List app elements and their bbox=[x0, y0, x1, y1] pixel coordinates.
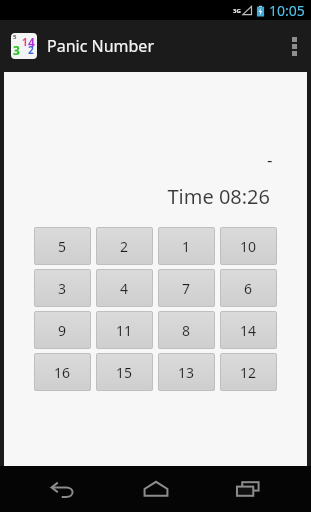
staticText: 10 bbox=[240, 237, 257, 256]
staticText: 11 bbox=[116, 321, 133, 340]
staticText: 14 bbox=[240, 321, 257, 340]
button[interactable]: 16 bbox=[34, 353, 91, 391]
staticText: 2 bbox=[28, 43, 34, 57]
button[interactable]: 11 bbox=[96, 311, 153, 349]
button[interactable]: 2 bbox=[96, 227, 153, 265]
staticText: 13 bbox=[178, 363, 195, 382]
button[interactable]: 12 bbox=[220, 353, 277, 391]
button[interactable]: 1 bbox=[158, 227, 215, 265]
staticText: 3 bbox=[13, 42, 20, 58]
button[interactable]: 7 bbox=[158, 269, 215, 307]
staticText: 5 bbox=[13, 33, 17, 41]
staticText: 10:05 bbox=[269, 1, 305, 20]
staticText: Panic Number bbox=[47, 35, 154, 57]
button[interactable]: Home bbox=[127, 466, 185, 512]
staticText: 2 bbox=[120, 237, 129, 256]
button[interactable]: 13 bbox=[158, 353, 215, 391]
button[interactable]: 5 bbox=[34, 227, 91, 265]
button[interactable]: Recent apps bbox=[219, 466, 277, 512]
staticText: 6 bbox=[244, 279, 253, 298]
staticText: - bbox=[267, 148, 273, 171]
button[interactable]: 4 bbox=[96, 269, 153, 307]
button[interactable]: Back bbox=[34, 466, 92, 512]
staticText: 3 bbox=[58, 279, 67, 298]
staticText: 4 bbox=[28, 34, 35, 50]
staticText: 3G bbox=[233, 7, 241, 15]
button[interactable]: 8 bbox=[158, 311, 215, 349]
staticText: 1 bbox=[22, 35, 28, 49]
staticText: 15 bbox=[116, 363, 133, 382]
staticText: 7 bbox=[182, 279, 191, 298]
staticText: 16 bbox=[54, 363, 71, 382]
button[interactable]: 9 bbox=[34, 311, 91, 349]
staticText: 9 bbox=[58, 321, 67, 340]
staticText: 4 bbox=[120, 279, 129, 298]
staticText: 12 bbox=[240, 363, 257, 382]
button[interactable]: 14 bbox=[220, 311, 277, 349]
button[interactable]: 10 bbox=[220, 227, 277, 265]
staticText: 8 bbox=[182, 321, 191, 340]
button[interactable]: 6 bbox=[220, 269, 277, 307]
button[interactable]: 15 bbox=[96, 353, 153, 391]
button[interactable]: 3 bbox=[34, 269, 91, 307]
staticText: 1 bbox=[182, 237, 191, 256]
staticText: Time 08:26 bbox=[4, 183, 270, 210]
button[interactable]: More options bbox=[277, 20, 311, 72]
staticText: 5 bbox=[58, 237, 67, 256]
